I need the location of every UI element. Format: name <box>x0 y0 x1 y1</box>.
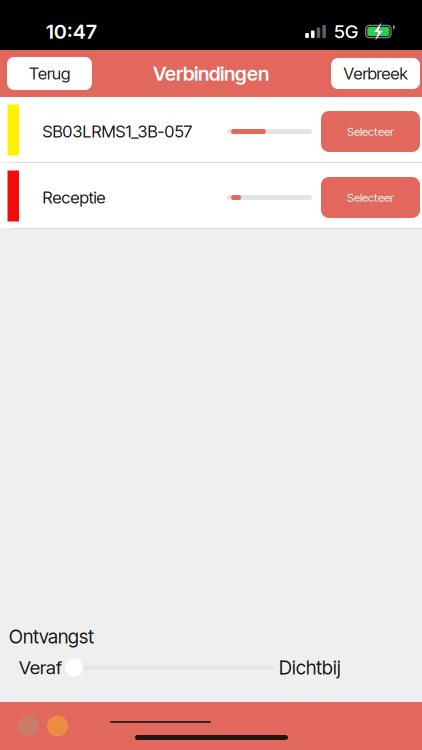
button[interactable]: Receptie <box>0 163 422 228</box>
button[interactable]: Selecteer <box>321 177 420 218</box>
button[interactable]: Terug <box>7 57 92 90</box>
staticText: Ontvangst <box>9 625 94 648</box>
button[interactable]: Selecteer <box>321 111 420 152</box>
staticText: Verbreek <box>343 63 407 84</box>
staticText: 10:47 <box>46 19 97 44</box>
staticText: 5G <box>334 20 358 43</box>
staticText: Receptie <box>42 187 105 208</box>
staticText: SB03LRMS1_3B-057 <box>42 121 192 142</box>
staticText: Veraf <box>19 656 62 679</box>
staticText: Verbindingen <box>153 62 269 85</box>
button[interactable]: SB03LRMS1_3B-057 <box>0 97 422 162</box>
staticText: Selecteer <box>347 191 394 204</box>
button[interactable]: Verbreek <box>331 58 420 89</box>
staticText: Dichtbij <box>279 656 341 679</box>
staticText: Terug <box>29 63 70 84</box>
staticText: Selecteer <box>347 125 394 138</box>
